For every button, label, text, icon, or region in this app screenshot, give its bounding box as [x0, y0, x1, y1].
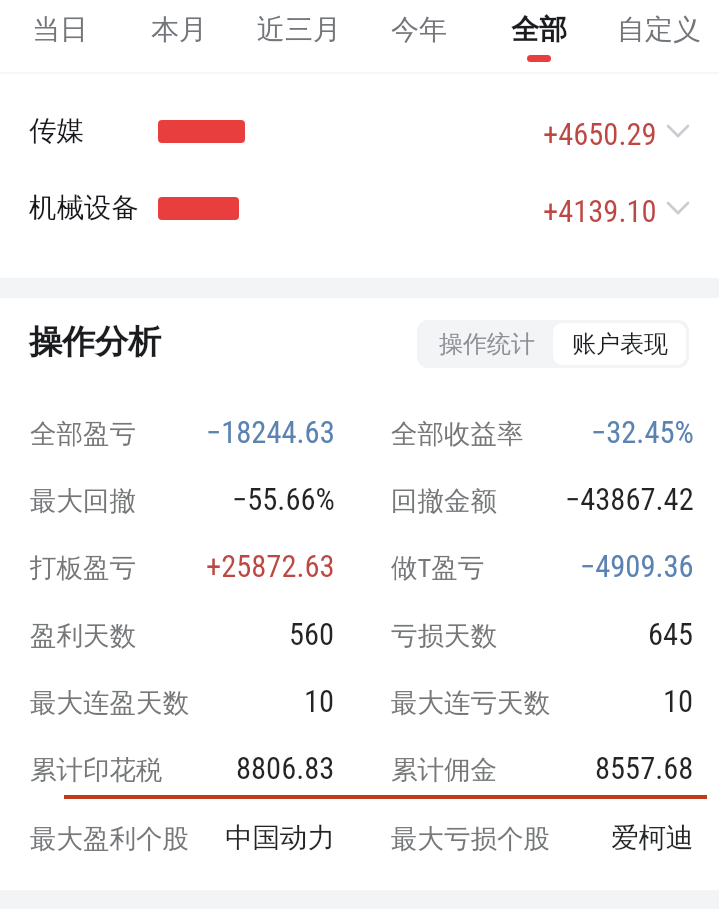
- staticText: 最大回撤: [30, 484, 136, 517]
- staticText: −55.66%: [232, 482, 335, 518]
- button[interactable]: 近三月: [239, 0, 359, 73]
- staticText: −18244.63: [206, 415, 335, 451]
- staticText: 最大盈利个股: [30, 822, 189, 855]
- staticText: 560: [289, 617, 335, 653]
- staticText: −43867.42: [565, 482, 694, 518]
- staticText: 645: [648, 617, 694, 653]
- staticText: 爱柯迪: [611, 821, 694, 856]
- staticText: 中国动力: [225, 821, 335, 856]
- staticText: 当日: [32, 12, 88, 47]
- staticText: 传媒: [29, 114, 84, 149]
- staticText: 最大亏损个股: [391, 822, 550, 855]
- staticText: +25872.63: [206, 549, 335, 585]
- staticText: 操作统计: [439, 329, 535, 359]
- staticText: 回撤金额: [391, 484, 497, 517]
- staticText: 10: [304, 684, 335, 720]
- staticText: −4909.36: [580, 549, 694, 585]
- staticText: 打板盈亏: [30, 551, 136, 584]
- button[interactable]: 全部: [479, 0, 599, 73]
- staticText: +4650.29: [543, 117, 657, 153]
- staticText: 累计印花税: [30, 753, 163, 786]
- button[interactable]: 账户表现: [553, 323, 686, 365]
- button[interactable]: 机械设备: [0, 169, 719, 247]
- staticText: 做T盈亏: [391, 551, 485, 584]
- staticText: 全部: [511, 12, 567, 47]
- button[interactable]: 操作统计: [420, 323, 553, 365]
- button[interactable]: 今年: [359, 0, 479, 73]
- staticText: 近三月: [257, 12, 341, 47]
- button[interactable]: 本月: [119, 0, 239, 73]
- staticText: 本月: [151, 12, 207, 47]
- staticText: 最大连盈天数: [30, 686, 189, 719]
- staticText: 自定义: [617, 12, 701, 47]
- staticText: 亏损天数: [391, 619, 497, 652]
- staticText: +4139.10: [543, 194, 657, 230]
- other: 展开: [668, 203, 688, 213]
- staticText: 操作分析: [29, 321, 161, 363]
- staticText: −32.45%: [591, 415, 694, 451]
- staticText: 机械设备: [29, 191, 139, 226]
- staticText: 盈利天数: [30, 619, 136, 652]
- button[interactable]: 当日: [0, 0, 119, 73]
- staticText: 8806.83: [236, 751, 335, 787]
- staticText: 10: [663, 684, 694, 720]
- staticText: 累计佣金: [391, 753, 497, 786]
- staticText: 今年: [391, 12, 447, 47]
- staticText: 8557.68: [595, 751, 694, 787]
- staticText: 全部盈亏: [30, 417, 136, 450]
- button[interactable]: 传媒: [0, 92, 719, 170]
- button[interactable]: 自定义: [599, 0, 719, 73]
- other: 展开: [668, 126, 688, 136]
- staticText: 全部收益率: [391, 417, 524, 450]
- staticText: 最大连亏天数: [391, 686, 550, 719]
- staticText: 账户表现: [572, 329, 668, 359]
